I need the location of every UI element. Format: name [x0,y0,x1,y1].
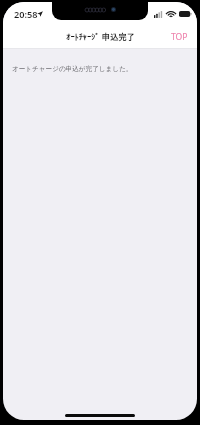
staticText: TOP [171,31,188,43]
other: Battery full [179,10,192,18]
other: Location services active [37,11,43,17]
staticText: 20:58 [14,8,38,21]
staticText: オートチャージの申込が完了しました。 [12,65,133,73]
button[interactable]: TOP [163,26,197,48]
staticText: ｵｰﾄﾁｬｰｼﾞ 申込完了 [66,31,135,42]
other: Cellular signal [154,11,163,18]
other: Wi-Fi [166,11,176,18]
